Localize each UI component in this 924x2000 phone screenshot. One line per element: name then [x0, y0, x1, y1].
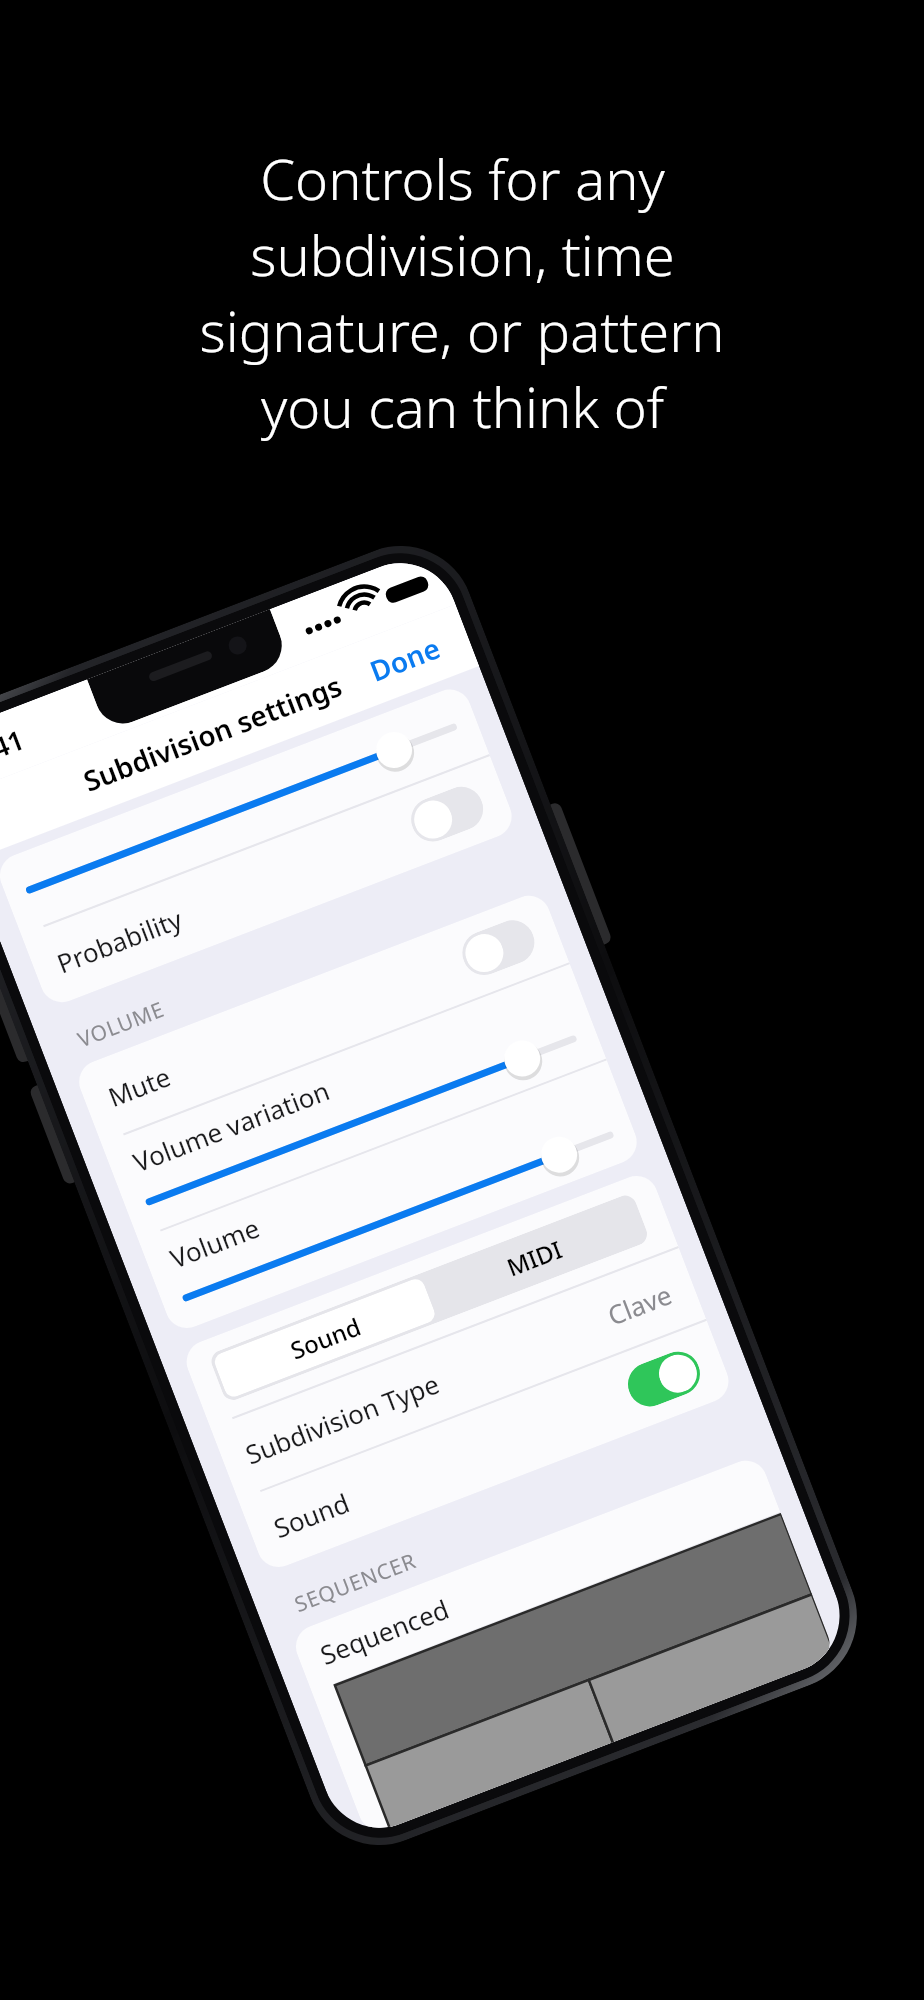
staticText: Volume: [165, 1209, 264, 1275]
button[interactable]: [0, 683, 489, 934]
staticText: Probability: [52, 900, 188, 980]
staticText: Sequenced: [315, 1591, 454, 1672]
staticText: Subdivision settings: [78, 666, 347, 800]
button[interactable]: Volume: [138, 1060, 643, 1334]
staticText: signature, or pattern: [199, 292, 725, 368]
button[interactable]: Mute: [73, 889, 569, 1142]
staticText: MIDI: [502, 1232, 567, 1283]
staticText: Mute: [103, 1058, 175, 1114]
button[interactable]: Volume variation: [101, 964, 606, 1238]
button[interactable]: Sound: [238, 1321, 735, 1573]
staticText: you can think of: [261, 368, 664, 444]
other: Mute: [456, 914, 541, 981]
staticText: Volume variation: [128, 1072, 335, 1179]
staticText: Controls for any: [260, 140, 665, 216]
button[interactable]: Probability: [21, 756, 518, 1009]
other: Probability: [405, 780, 490, 848]
staticText: Sound: [285, 1310, 365, 1367]
staticText: SEQUENCER: [290, 1546, 420, 1619]
button[interactable]: Subdivision Type: [210, 1248, 706, 1499]
staticText: Done: [364, 628, 446, 690]
button[interactable]: Done: [333, 608, 478, 710]
staticText: Clave: [602, 1276, 677, 1332]
button[interactable]: MIDI: [421, 1196, 647, 1319]
staticText: Subdivision Type: [240, 1365, 444, 1471]
other: Sound: [621, 1345, 706, 1413]
button[interactable]: Sound: [212, 1276, 437, 1399]
staticText: Sound: [269, 1484, 355, 1545]
staticText: VOLUME: [74, 995, 169, 1054]
staticText: subdivision, time: [250, 216, 675, 292]
staticText: 9:41: [0, 720, 29, 774]
